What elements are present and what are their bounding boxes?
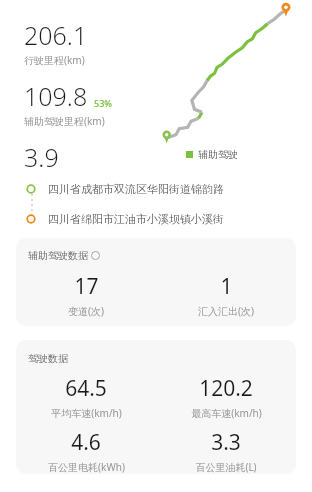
staticText: 109.8 [24,79,88,113]
staticText: 最高车速(km/h) [191,406,262,420]
staticText: 1 [220,272,233,301]
staticText: 变道(次) [68,304,104,318]
staticText: 64.5 [65,374,107,403]
button[interactable]: 驾驶数据 [16,340,296,474]
staticText: 4.6 [71,428,101,457]
staticText: 3.9 [24,140,59,172]
staticText: 辅助驾驶里程(km) [24,114,105,128]
staticText: 百公里油耗(L) [195,460,257,474]
staticText: 四川省成都市双流区华阳街道锦韵路 [48,182,224,196]
staticText: 汇入汇出(次) [198,304,254,318]
staticText: 17 [74,272,99,301]
staticText: 辅助驾驶数据 [28,249,88,262]
staticText: 百公里电耗(kWh) [48,460,125,474]
other: 说明 [91,251,100,260]
staticText: 驾驶数据 [28,352,68,365]
staticText: 53% [94,97,112,109]
staticText: 辅助驾驶 [198,148,238,161]
button[interactable]: 辅助驾驶数据 [16,238,296,326]
staticText: 四川省绵阳市江油市小溪坝镇小溪街 [48,212,224,226]
staticText: 行驶里程(km) [24,53,85,67]
staticText: 平均车速(km/h) [51,406,122,420]
staticText: 206.1 [24,18,88,52]
staticText: 120.2 [199,374,253,403]
staticText: 3.3 [211,428,241,457]
